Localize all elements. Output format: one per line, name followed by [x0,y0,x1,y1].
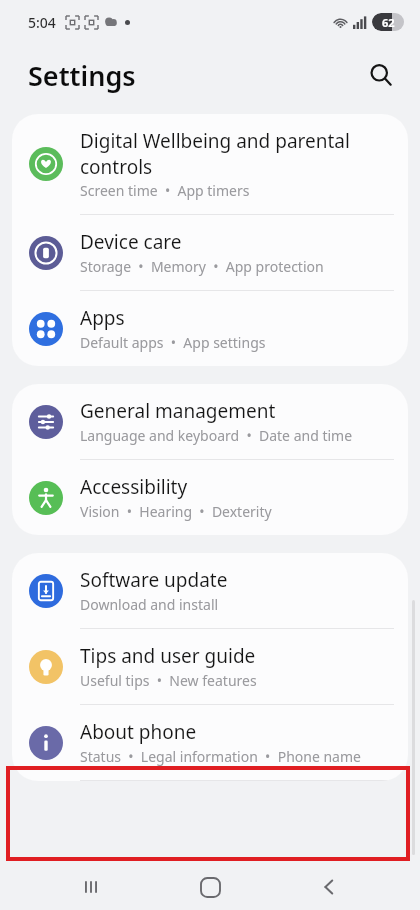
staticText: Download and install [80,595,219,614]
button[interactable]: Digital Wellbeing and parental controls [12,114,408,214]
staticText: About phone [80,719,197,745]
staticText: 5:04 [28,13,56,32]
button[interactable]: Back [301,864,357,910]
staticText: Digital Wellbeing and parental controls [80,128,394,179]
staticText: Language and keyboard • Date and time [80,426,353,445]
button[interactable]: Apps [12,291,408,366]
button[interactable]: General management [12,384,408,459]
staticText: Useful tips • New features [80,671,257,690]
button[interactable]: Recent apps [63,864,119,910]
button[interactable]: Tips and user guide [12,629,408,704]
staticText: Storage • Memory • App protection [80,257,324,276]
staticText: Vision • Hearing • Dexterity [80,502,272,521]
staticText: 62 [382,15,395,30]
button[interactable]: Search [364,58,398,92]
button[interactable]: About phone [12,705,408,780]
staticText: Apps [80,305,125,331]
staticText: Accessibility [80,474,188,500]
button[interactable]: Software update [12,553,408,628]
button[interactable]: Accessibility [12,460,408,535]
staticText: Screen time • App timers [80,181,250,200]
staticText: General management [80,398,276,424]
staticText: Software update [80,567,228,593]
staticText: Settings [28,57,136,94]
staticText: Tips and user guide [80,643,256,669]
button[interactable]: Home [182,864,238,910]
staticText: Device care [80,229,182,255]
staticText: Status • Legal information • Phone name [80,747,361,766]
button[interactable]: Device care [12,215,408,290]
staticText: Default apps • App settings [80,333,266,352]
